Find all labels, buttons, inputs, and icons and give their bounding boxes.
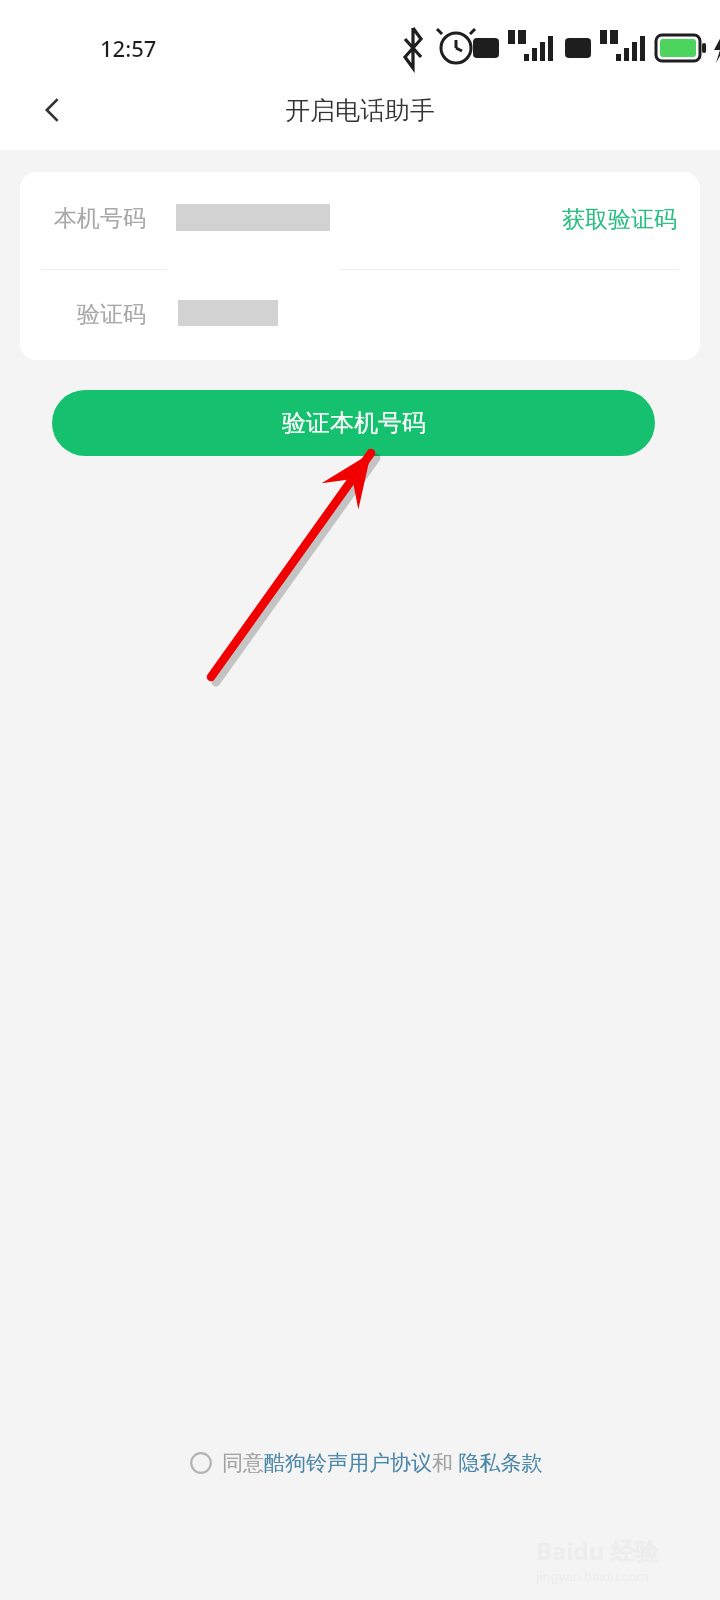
staticText: 开启电话助手 bbox=[0, 95, 720, 126]
button[interactable]: 获取验证码 bbox=[558, 197, 681, 242]
staticText: 本机号码 bbox=[20, 204, 146, 233]
button[interactable]: Back bbox=[20, 78, 84, 142]
staticText: 12:57 bbox=[100, 33, 157, 63]
staticText: 同意酷狗铃声用户协议和 隐私条款 bbox=[222, 1448, 543, 1477]
staticText: 获取验证码 bbox=[562, 205, 677, 234]
button[interactable]: 验证本机号码 bbox=[52, 390, 655, 456]
staticText: Baidu 经验 bbox=[536, 1534, 659, 1567]
staticText: 验证码 bbox=[20, 300, 146, 329]
button[interactable]: 同意酷狗铃声用户协议和 隐私条款 bbox=[186, 1442, 547, 1483]
staticText: 验证本机号码 bbox=[282, 408, 426, 438]
